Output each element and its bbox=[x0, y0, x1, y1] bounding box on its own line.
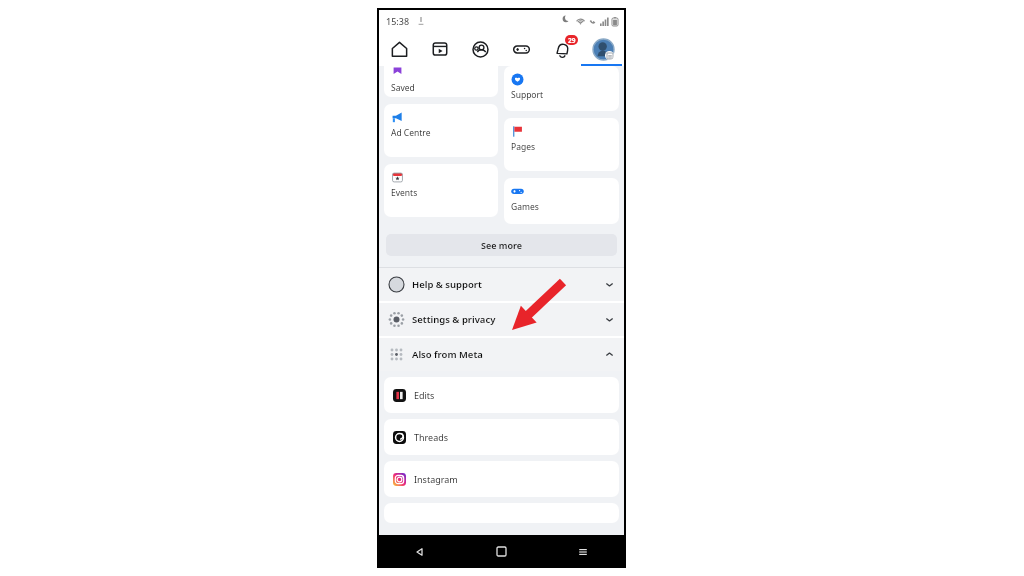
button[interactable]: Gaming bbox=[501, 32, 542, 66]
button[interactable]: Pages bbox=[504, 118, 619, 171]
staticText: Saved bbox=[391, 82, 415, 94]
button[interactable]: Notifications bbox=[542, 32, 583, 66]
staticText: Events bbox=[391, 187, 418, 199]
button[interactable]: Games bbox=[504, 178, 619, 224]
button[interactable]: Threads bbox=[384, 419, 619, 455]
staticText: Threads bbox=[414, 431, 449, 443]
staticText: Edits bbox=[414, 389, 435, 401]
button[interactable]: Video bbox=[419, 32, 460, 66]
button[interactable]: Support bbox=[504, 66, 619, 111]
button[interactable]: Home bbox=[460, 535, 542, 568]
button[interactable]: Recent apps bbox=[542, 535, 624, 568]
button[interactable]: Also from Meta bbox=[379, 338, 624, 371]
button[interactable]: See more bbox=[386, 234, 617, 256]
button[interactable]: Home bbox=[379, 32, 419, 66]
button[interactable]: Events bbox=[384, 164, 498, 217]
staticText: Help & support bbox=[412, 278, 605, 291]
button[interactable]: Help & support bbox=[379, 268, 624, 301]
button[interactable]: Friends bbox=[460, 32, 501, 66]
staticText: Instagram bbox=[414, 473, 458, 485]
button[interactable]: Back bbox=[379, 535, 460, 568]
button[interactable]: Instagram bbox=[384, 461, 619, 497]
button[interactable]: Edits bbox=[384, 377, 619, 413]
button[interactable]: Ad Centre bbox=[384, 104, 498, 157]
button[interactable]: Saved bbox=[384, 66, 498, 97]
staticText: Also from Meta bbox=[412, 348, 605, 361]
staticText: Support bbox=[511, 89, 544, 101]
button[interactable]: Profile bbox=[583, 32, 624, 66]
button[interactable]: Settings & privacy bbox=[379, 303, 624, 336]
staticText: See more bbox=[481, 239, 523, 251]
staticText: Pages bbox=[511, 141, 536, 153]
staticText: Ad Centre bbox=[391, 127, 431, 139]
staticText: 15:38 bbox=[386, 15, 410, 27]
staticText: Games bbox=[511, 201, 539, 213]
staticText: 29 bbox=[568, 36, 576, 45]
staticText: Settings & privacy bbox=[412, 313, 605, 326]
